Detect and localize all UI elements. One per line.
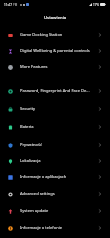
staticText: Lokalizacja <box>20 158 96 164</box>
staticText: Ustawienia <box>44 15 67 21</box>
button[interactable]: Password, Fingerprint And Face De... <box>0 83 110 99</box>
staticText: Informacje o aplikacjach <box>20 174 96 180</box>
staticText: Security <box>20 106 96 112</box>
button[interactable]: Digital Wellbeing & parental controls <box>0 43 110 59</box>
button[interactable]: Informacje o aplikacjach <box>0 169 110 185</box>
button[interactable]: Lokalizacja <box>0 153 110 169</box>
staticText: Game Docking Station <box>20 32 96 38</box>
staticText: More Features <box>20 64 96 70</box>
button[interactable]: System update <box>0 203 110 219</box>
staticText: 11:47 <box>4 3 12 7</box>
button[interactable]: Security <box>0 101 110 117</box>
button[interactable]: Advanced settings <box>0 186 110 202</box>
staticText: System update <box>20 208 96 214</box>
button[interactable]: Bateria <box>0 119 110 135</box>
staticText: Digital Wellbeing & parental controls <box>20 48 96 54</box>
staticText: Informacje o telefonie <box>20 225 96 231</box>
button[interactable]: Game Docking Station <box>0 27 110 43</box>
staticText: 17% <box>93 3 99 7</box>
staticText: Advanced settings <box>20 191 96 197</box>
staticText: PM <box>13 3 18 7</box>
staticText: Bateria <box>20 124 96 130</box>
button[interactable]: More Features <box>0 59 110 75</box>
staticText: Password, Fingerprint And Face De... <box>20 88 96 94</box>
staticText: Prywatność <box>20 142 96 148</box>
button[interactable]: Informacje o telefonie <box>0 220 110 236</box>
button[interactable]: Prywatność <box>0 137 110 153</box>
